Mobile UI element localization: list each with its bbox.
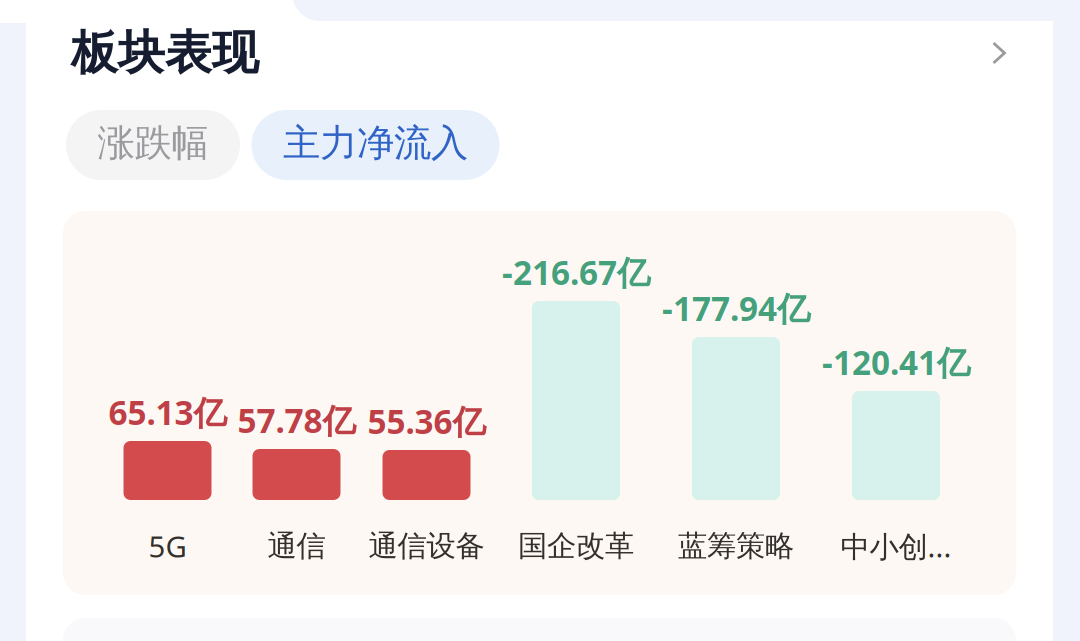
button[interactable]: 涨跌幅	[66, 110, 240, 180]
button[interactable]: 国企改革 主力净流入 -216.67亿	[511, 211, 641, 595]
staticText: 蓝筹策略	[678, 528, 794, 564]
button[interactable]: 通信 主力净流入 57.78亿	[231, 211, 361, 595]
staticText: 55.36亿	[367, 399, 485, 443]
button[interactable]: 通信设备 主力净流入 55.36亿	[361, 211, 491, 595]
button[interactable]: 蓝筹策略 主力净流入 -177.94亿	[671, 211, 801, 595]
staticText: 涨跌幅	[97, 120, 208, 166]
button[interactable]: 主力净流入	[251, 110, 499, 180]
button[interactable]: 5G 主力净流入 65.13亿	[102, 211, 232, 595]
staticText: 主力净流入	[283, 120, 468, 166]
staticText: -120.41亿	[822, 340, 970, 384]
staticText: 通信设备	[368, 528, 484, 564]
staticText: 通信	[267, 528, 325, 564]
staticText: 国企改革	[518, 528, 634, 564]
staticText: -177.94亿	[662, 286, 810, 330]
button[interactable]: 板块表现，查看详情	[26, 21, 1053, 105]
button[interactable]: 中小创... 主力净流入 -120.41亿	[831, 211, 961, 595]
staticText: 65.13亿	[108, 390, 226, 434]
staticText: 5G	[148, 526, 186, 565]
staticText: -216.67亿	[502, 250, 650, 294]
staticText: 板块表现	[71, 24, 259, 82]
staticText: 中小创...	[840, 526, 951, 565]
staticText: 57.78亿	[237, 398, 355, 442]
